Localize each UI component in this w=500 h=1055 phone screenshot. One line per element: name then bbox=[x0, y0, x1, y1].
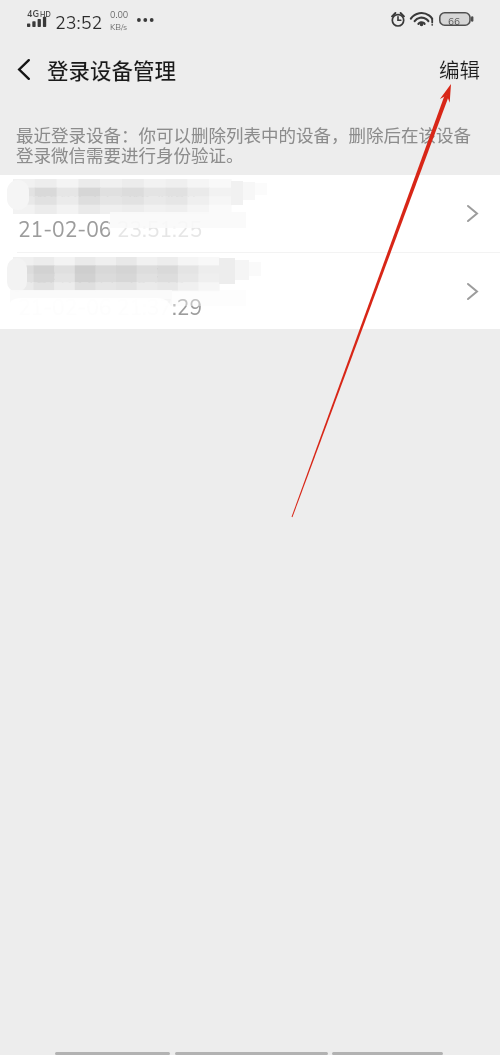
staticText: HD bbox=[40, 10, 51, 20]
staticText: 4G bbox=[27, 8, 40, 20]
button[interactable]: HUAWEI P40 Pro bbox=[0, 253, 500, 329]
staticText: 登录设备管理 bbox=[47, 54, 177, 85]
staticText: HUAWEI P40 Pro bbox=[18, 263, 186, 292]
staticText: 0.00 bbox=[110, 9, 129, 21]
other: Back bbox=[18, 59, 30, 80]
staticText: 最近登录设备：你可以删除列表中的设备，删除后在该设备登录微信需要进行身份验证。 bbox=[16, 126, 484, 166]
button[interactable]: Home bbox=[175, 1045, 328, 1055]
staticText: 21-02-06 23:51:25 bbox=[18, 216, 202, 245]
staticText: 66 bbox=[448, 15, 460, 29]
staticText: 23:52 bbox=[55, 11, 103, 36]
staticText: 21-02-06 21:37:29 bbox=[18, 294, 202, 323]
button[interactable]: Back bbox=[0, 42, 187, 96]
button[interactable]: Recent apps bbox=[55, 1045, 170, 1055]
staticText: iPhone 11 Pro Max bbox=[18, 185, 197, 214]
button[interactable]: iPhone 11 Pro Max bbox=[0, 175, 500, 252]
button[interactable]: Back bbox=[332, 1045, 443, 1055]
button[interactable]: 编辑 bbox=[419, 42, 500, 96]
staticText: 编辑 bbox=[439, 54, 480, 84]
staticText: KB/s bbox=[110, 21, 128, 33]
